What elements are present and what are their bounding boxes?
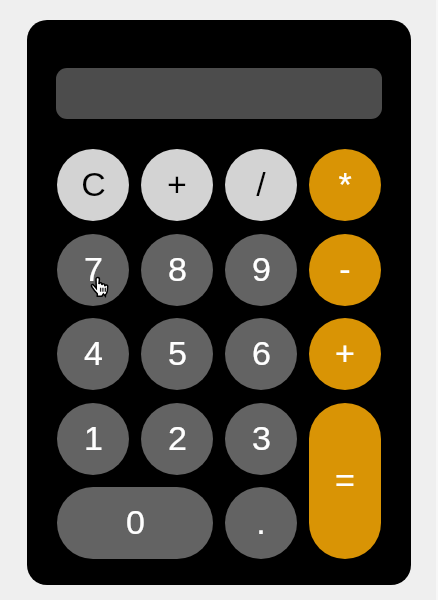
staticText: .	[256, 503, 266, 541]
staticText: 3	[252, 419, 271, 457]
button[interactable]: 0	[57, 487, 213, 559]
staticText: C	[81, 165, 106, 203]
staticText: 5	[168, 334, 187, 372]
other: Pointer	[91, 276, 111, 297]
button[interactable]: C	[57, 149, 129, 221]
button[interactable]: 6	[225, 318, 297, 390]
button[interactable]: +	[309, 318, 381, 390]
button[interactable]: 4	[57, 318, 129, 390]
staticText: 1	[84, 419, 103, 457]
button[interactable]: 1	[57, 403, 129, 475]
staticText: 4	[84, 334, 103, 372]
staticText: /	[256, 165, 266, 203]
button[interactable]: +	[141, 149, 213, 221]
staticText: 9	[252, 250, 271, 288]
staticText: 8	[168, 250, 187, 288]
button[interactable]: 8	[141, 234, 213, 306]
button[interactable]: 7	[57, 234, 129, 306]
staticText: +	[335, 334, 355, 372]
staticText: 2	[168, 419, 187, 457]
staticText: +	[167, 165, 187, 203]
button[interactable]: 3	[225, 403, 297, 475]
button[interactable]: -	[309, 234, 381, 306]
button[interactable]: 2	[141, 403, 213, 475]
button[interactable]: 9	[225, 234, 297, 306]
button[interactable]: .	[225, 487, 297, 559]
staticText: 0	[126, 503, 145, 541]
staticText: =	[335, 461, 355, 499]
button[interactable]: 5	[141, 318, 213, 390]
other: Display	[56, 68, 382, 119]
staticText: -	[339, 250, 351, 288]
button[interactable]: /	[225, 149, 297, 221]
button[interactable]: =	[309, 403, 381, 559]
staticText: 7	[84, 250, 103, 288]
button[interactable]: *	[309, 149, 381, 221]
staticText: 6	[252, 334, 271, 372]
staticText: *	[338, 165, 352, 203]
